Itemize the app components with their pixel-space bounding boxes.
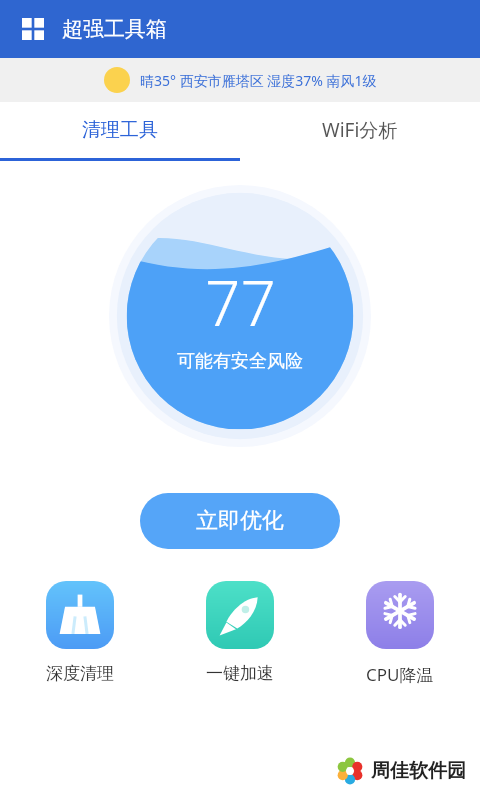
staticText: 周佳软件园 (371, 759, 466, 783)
staticText: 晴35° 西安市雁塔区 湿度37% 南风1级 (140, 71, 377, 90)
staticText: 77 (205, 260, 276, 344)
button[interactable]: CPU降温 (320, 581, 480, 686)
staticText: 超强工具箱 (62, 16, 167, 42)
button[interactable]: WiFi分析 (240, 102, 480, 158)
staticText: 清理工具 (82, 118, 158, 142)
staticText: 立即优化 (196, 507, 284, 535)
staticText: WiFi分析 (322, 117, 398, 143)
staticText: CPU降温 (366, 663, 434, 686)
button[interactable]: 一键加速 (160, 581, 320, 684)
staticText: 可能有安全风险 (177, 350, 303, 373)
button[interactable]: 深度清理 (0, 581, 160, 684)
staticText: 一键加速 (206, 663, 274, 684)
staticText: 深度清理 (46, 663, 114, 684)
button[interactable]: 立即优化 (140, 493, 340, 549)
button[interactable]: 清理工具 (0, 102, 240, 158)
button[interactable]: Menu (16, 12, 50, 46)
